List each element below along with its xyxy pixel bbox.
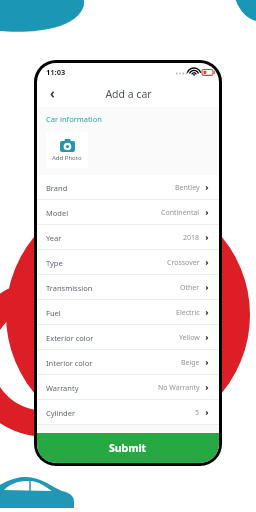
staticText: Add a car bbox=[105, 87, 152, 101]
staticText: Type bbox=[46, 258, 63, 268]
button[interactable]: Type bbox=[37, 250, 219, 275]
staticText: Beige bbox=[181, 358, 200, 368]
button[interactable]: Interior color bbox=[37, 350, 219, 375]
staticText: No Warranty bbox=[158, 383, 200, 393]
button[interactable]: Warranty bbox=[37, 375, 219, 400]
staticText: Exterior color bbox=[46, 333, 94, 343]
staticText: Year bbox=[46, 233, 62, 243]
staticText: Add Photo bbox=[52, 154, 82, 162]
button[interactable]: Fuel bbox=[37, 300, 219, 325]
button[interactable]: Back bbox=[43, 85, 61, 103]
staticText: Crossover bbox=[167, 258, 200, 268]
staticText: Electric bbox=[176, 308, 200, 318]
staticText: Brand bbox=[46, 183, 68, 193]
staticText: Submit bbox=[109, 441, 147, 455]
staticText: Bentley bbox=[175, 183, 200, 193]
staticText: Cylinder bbox=[46, 408, 76, 418]
staticText: Yellow bbox=[179, 333, 200, 343]
button[interactable]: Submit bbox=[37, 433, 219, 463]
button[interactable]: Cylinder bbox=[37, 400, 219, 425]
staticText: 5 bbox=[195, 408, 200, 418]
button[interactable]: Add Photo bbox=[46, 132, 88, 168]
staticText: Interior color bbox=[46, 358, 93, 368]
staticText: 2018 bbox=[183, 233, 200, 243]
staticText: Model bbox=[46, 208, 69, 218]
staticText: Car information bbox=[46, 114, 102, 124]
button[interactable]: Exterior color bbox=[37, 325, 219, 350]
staticText: Other bbox=[180, 283, 200, 293]
button[interactable]: Year bbox=[37, 225, 219, 250]
staticText: Warranty bbox=[46, 383, 79, 393]
staticText: Transmission bbox=[46, 283, 93, 293]
button[interactable]: Transmission bbox=[37, 275, 219, 300]
button[interactable]: Brand bbox=[37, 175, 219, 200]
staticText: Fuel bbox=[46, 308, 61, 318]
staticText: Continental bbox=[161, 208, 200, 218]
staticText: 11:03 bbox=[46, 67, 66, 77]
button[interactable]: Model bbox=[37, 200, 219, 225]
